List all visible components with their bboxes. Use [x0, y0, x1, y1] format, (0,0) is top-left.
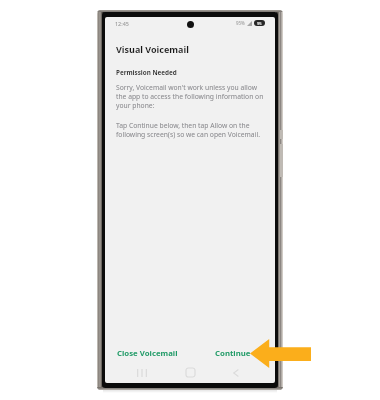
staticText: Continue	[215, 348, 251, 359]
staticText: Tap Continue below, then tap Allow on th…	[116, 121, 265, 139]
staticText: Permission Needed	[116, 68, 177, 77]
button[interactable]: Continue	[190, 342, 275, 364]
staticText: 12:45	[115, 20, 129, 27]
staticText: 95%	[236, 20, 245, 26]
staticText: Close Voicemail	[117, 348, 178, 359]
button[interactable]: Home	[174, 362, 206, 383]
staticText: Visual Voicemail	[116, 43, 189, 55]
button[interactable]: Close Voicemail	[105, 342, 190, 364]
button[interactable]: Recent apps	[126, 362, 158, 383]
staticText: 95	[257, 21, 262, 26]
staticText: Sorry, Voicemail won't work unless you a…	[116, 83, 265, 110]
